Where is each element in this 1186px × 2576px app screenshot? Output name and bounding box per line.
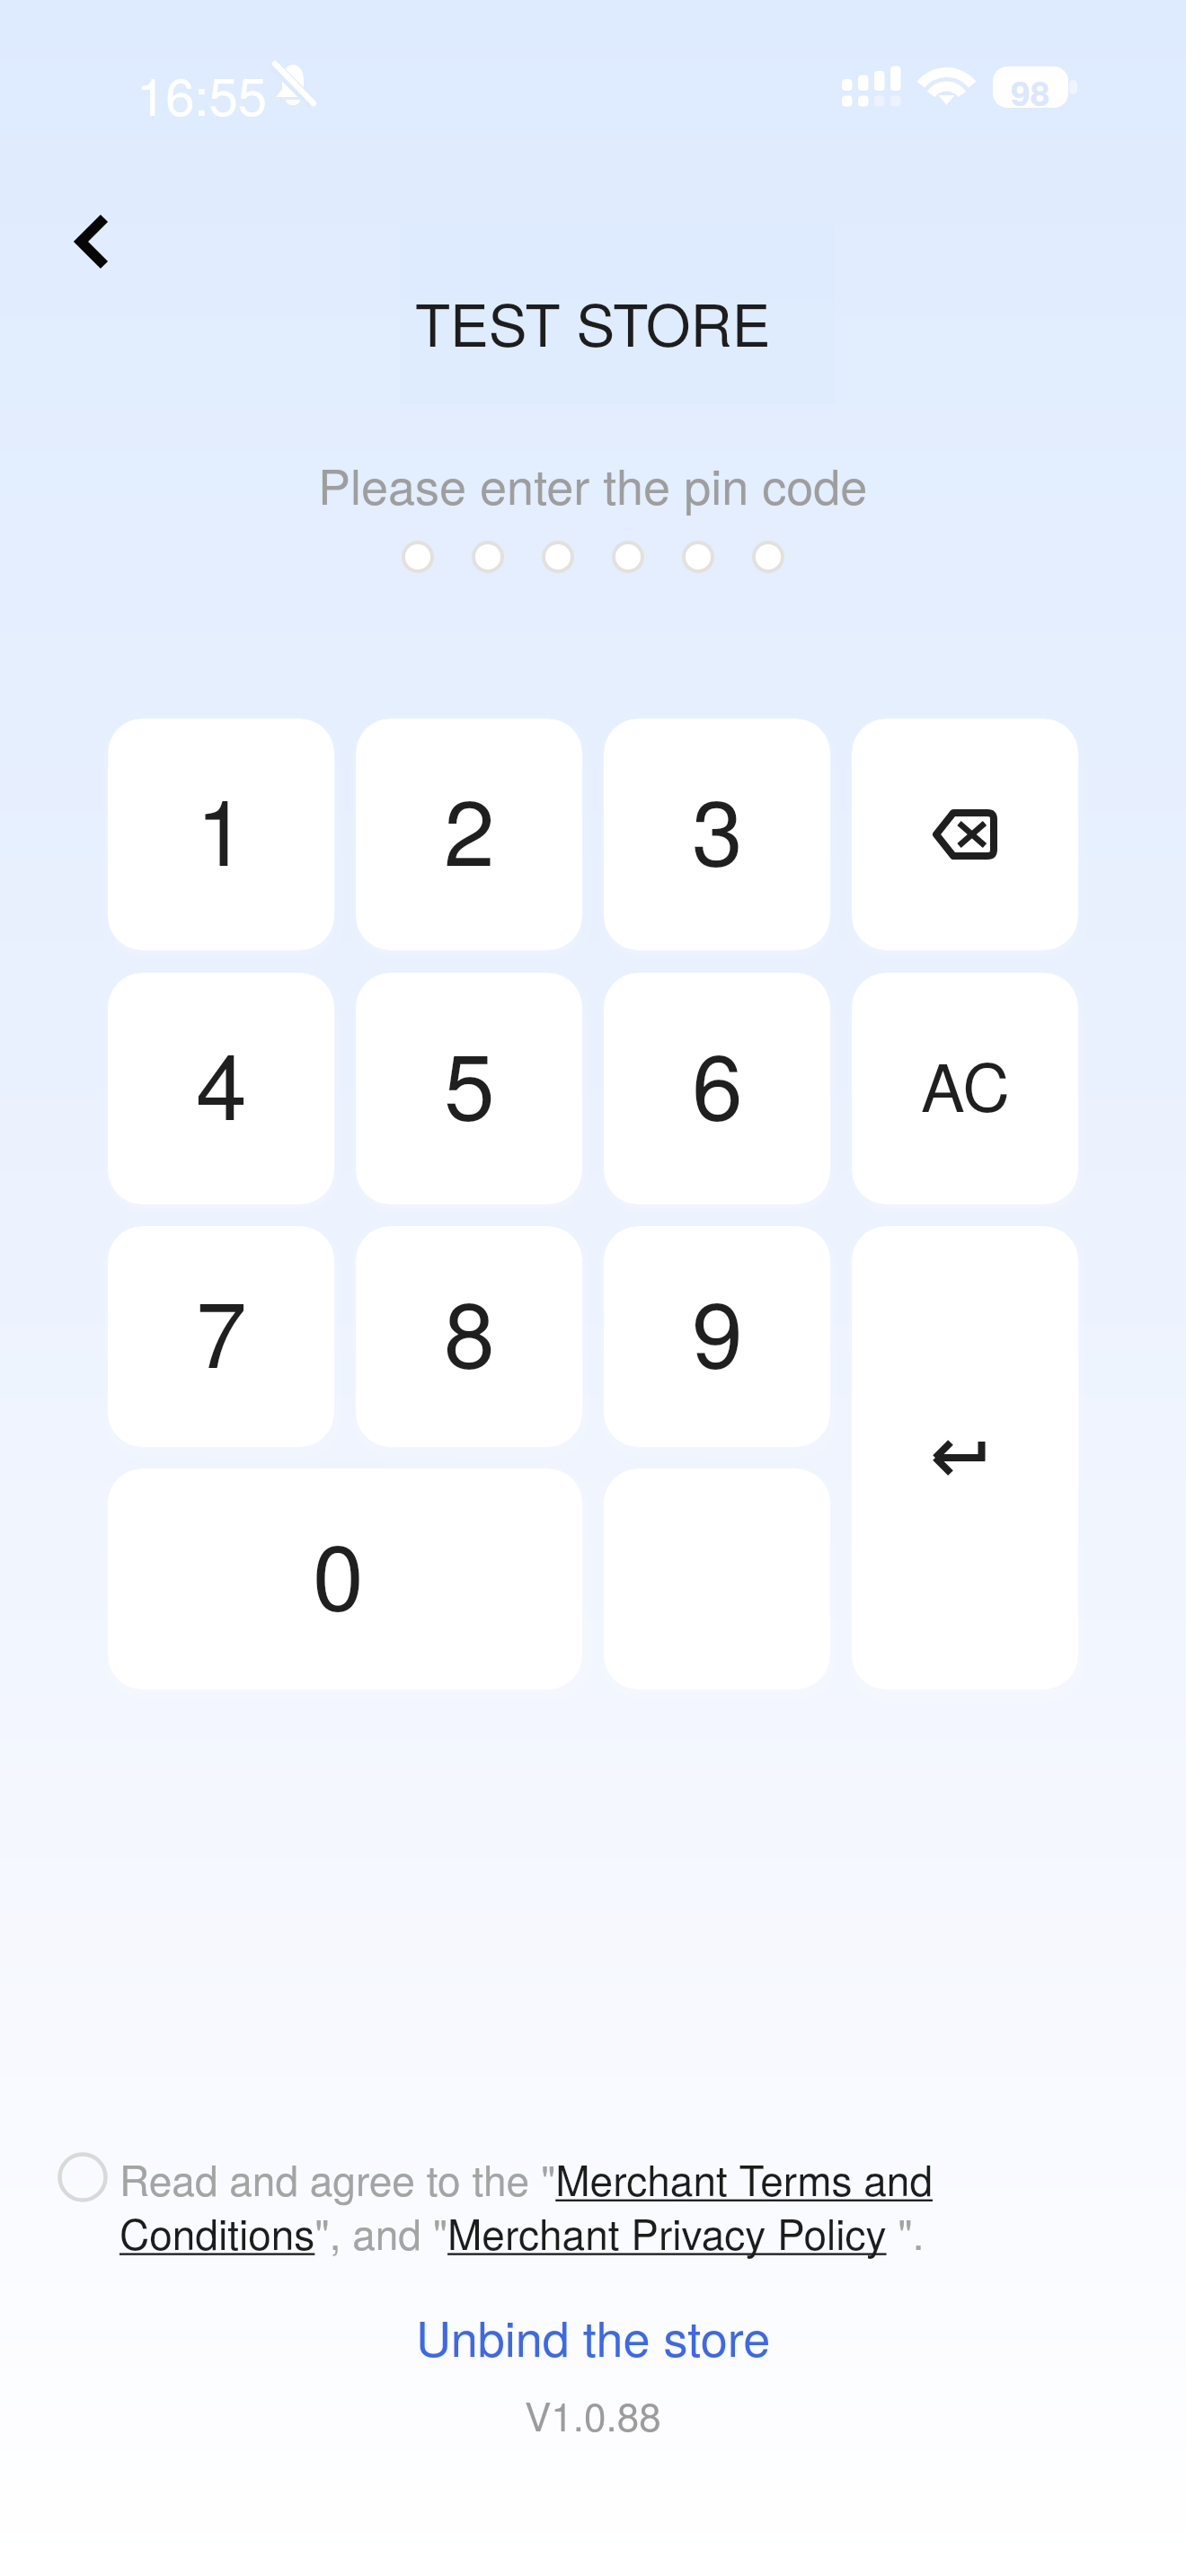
staticText: 1	[196, 761, 247, 892]
button[interactable]: Agree to terms	[58, 2152, 108, 2202]
staticText: 2	[444, 761, 495, 892]
button[interactable]: 8	[356, 1226, 582, 1447]
staticText: 98	[1011, 66, 1050, 108]
button[interactable]: Back	[27, 190, 128, 291]
staticText: Please enter the pin code	[318, 449, 868, 518]
staticText: 5	[444, 1015, 495, 1146]
button[interactable]: 5	[356, 973, 582, 1204]
staticText: 0	[313, 1505, 364, 1636]
button[interactable]: 3	[604, 719, 830, 950]
staticText: 6	[692, 1015, 743, 1146]
staticText: 3	[692, 761, 743, 892]
button[interactable]: AC	[852, 973, 1078, 1204]
staticText: TEST STORE	[415, 281, 771, 364]
staticText: Read and agree to the "Merchant Terms an…	[119, 2148, 964, 2262]
button[interactable]: 9	[604, 1226, 830, 1447]
staticText: 16:55	[137, 56, 268, 130]
button[interactable]: 4	[108, 973, 334, 1204]
button[interactable]: 1	[108, 719, 334, 950]
staticText: 4	[196, 1015, 247, 1146]
button[interactable]: Unbind the store	[416, 2301, 771, 2370]
button[interactable]: Delete	[852, 719, 1078, 950]
button[interactable]: 6	[604, 973, 830, 1204]
button[interactable]: 0	[108, 1469, 582, 1689]
staticText: 9	[692, 1263, 743, 1394]
staticText: 7	[196, 1263, 247, 1394]
button[interactable]: Read and agree to the "Merchant Terms an…	[119, 2148, 964, 2262]
staticText: AC	[921, 1037, 1010, 1131]
button[interactable]: 2	[356, 719, 582, 950]
staticText: 8	[444, 1263, 495, 1394]
staticText: V1.0.88	[525, 2386, 661, 2442]
button[interactable]: Enter	[852, 1226, 1078, 1689]
button[interactable]: 7	[108, 1226, 334, 1447]
